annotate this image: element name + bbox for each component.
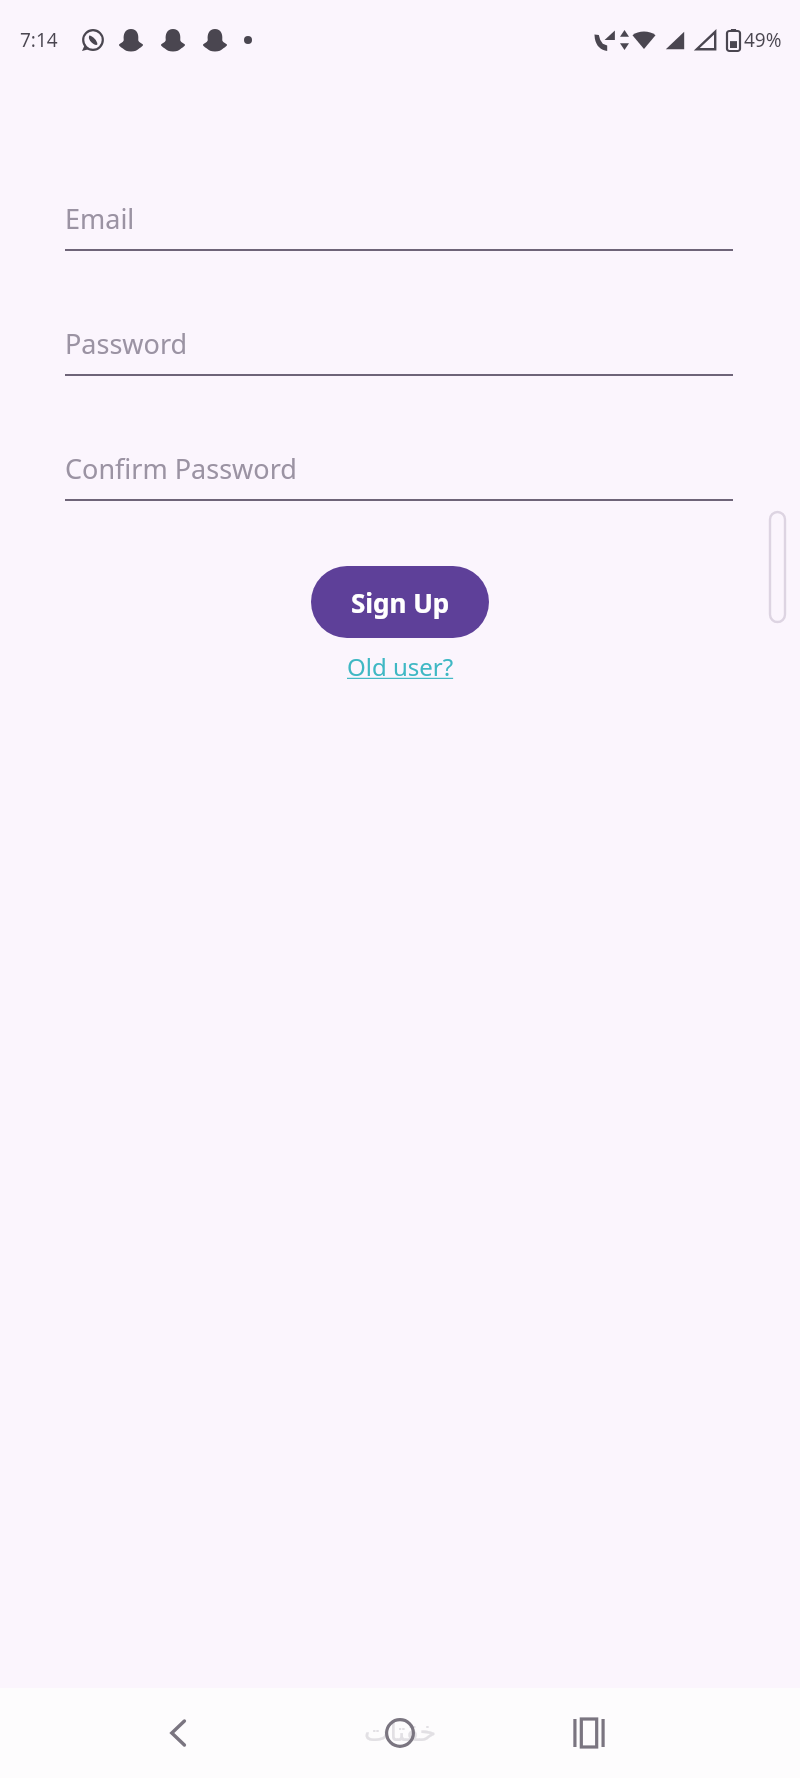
button[interactable]: Home <box>370 1703 430 1763</box>
staticText: 7:14 <box>20 27 58 53</box>
staticText: Sign Up <box>351 585 450 620</box>
button[interactable]: Password <box>65 325 733 376</box>
button[interactable]: Email <box>65 200 733 251</box>
staticText: Password <box>65 325 188 362</box>
staticText: Confirm Password <box>65 450 297 487</box>
staticText: خقتات <box>364 1716 437 1747</box>
staticText: 49% <box>744 27 782 53</box>
button[interactable]: Recent apps <box>560 1704 618 1762</box>
button[interactable]: Sign Up <box>311 566 489 638</box>
button[interactable]: Confirm Password <box>65 450 733 501</box>
staticText: Old user? <box>347 650 454 683</box>
button[interactable]: Old user? <box>341 646 460 687</box>
button[interactable]: Back <box>150 1704 208 1762</box>
staticText: Email <box>65 200 135 237</box>
